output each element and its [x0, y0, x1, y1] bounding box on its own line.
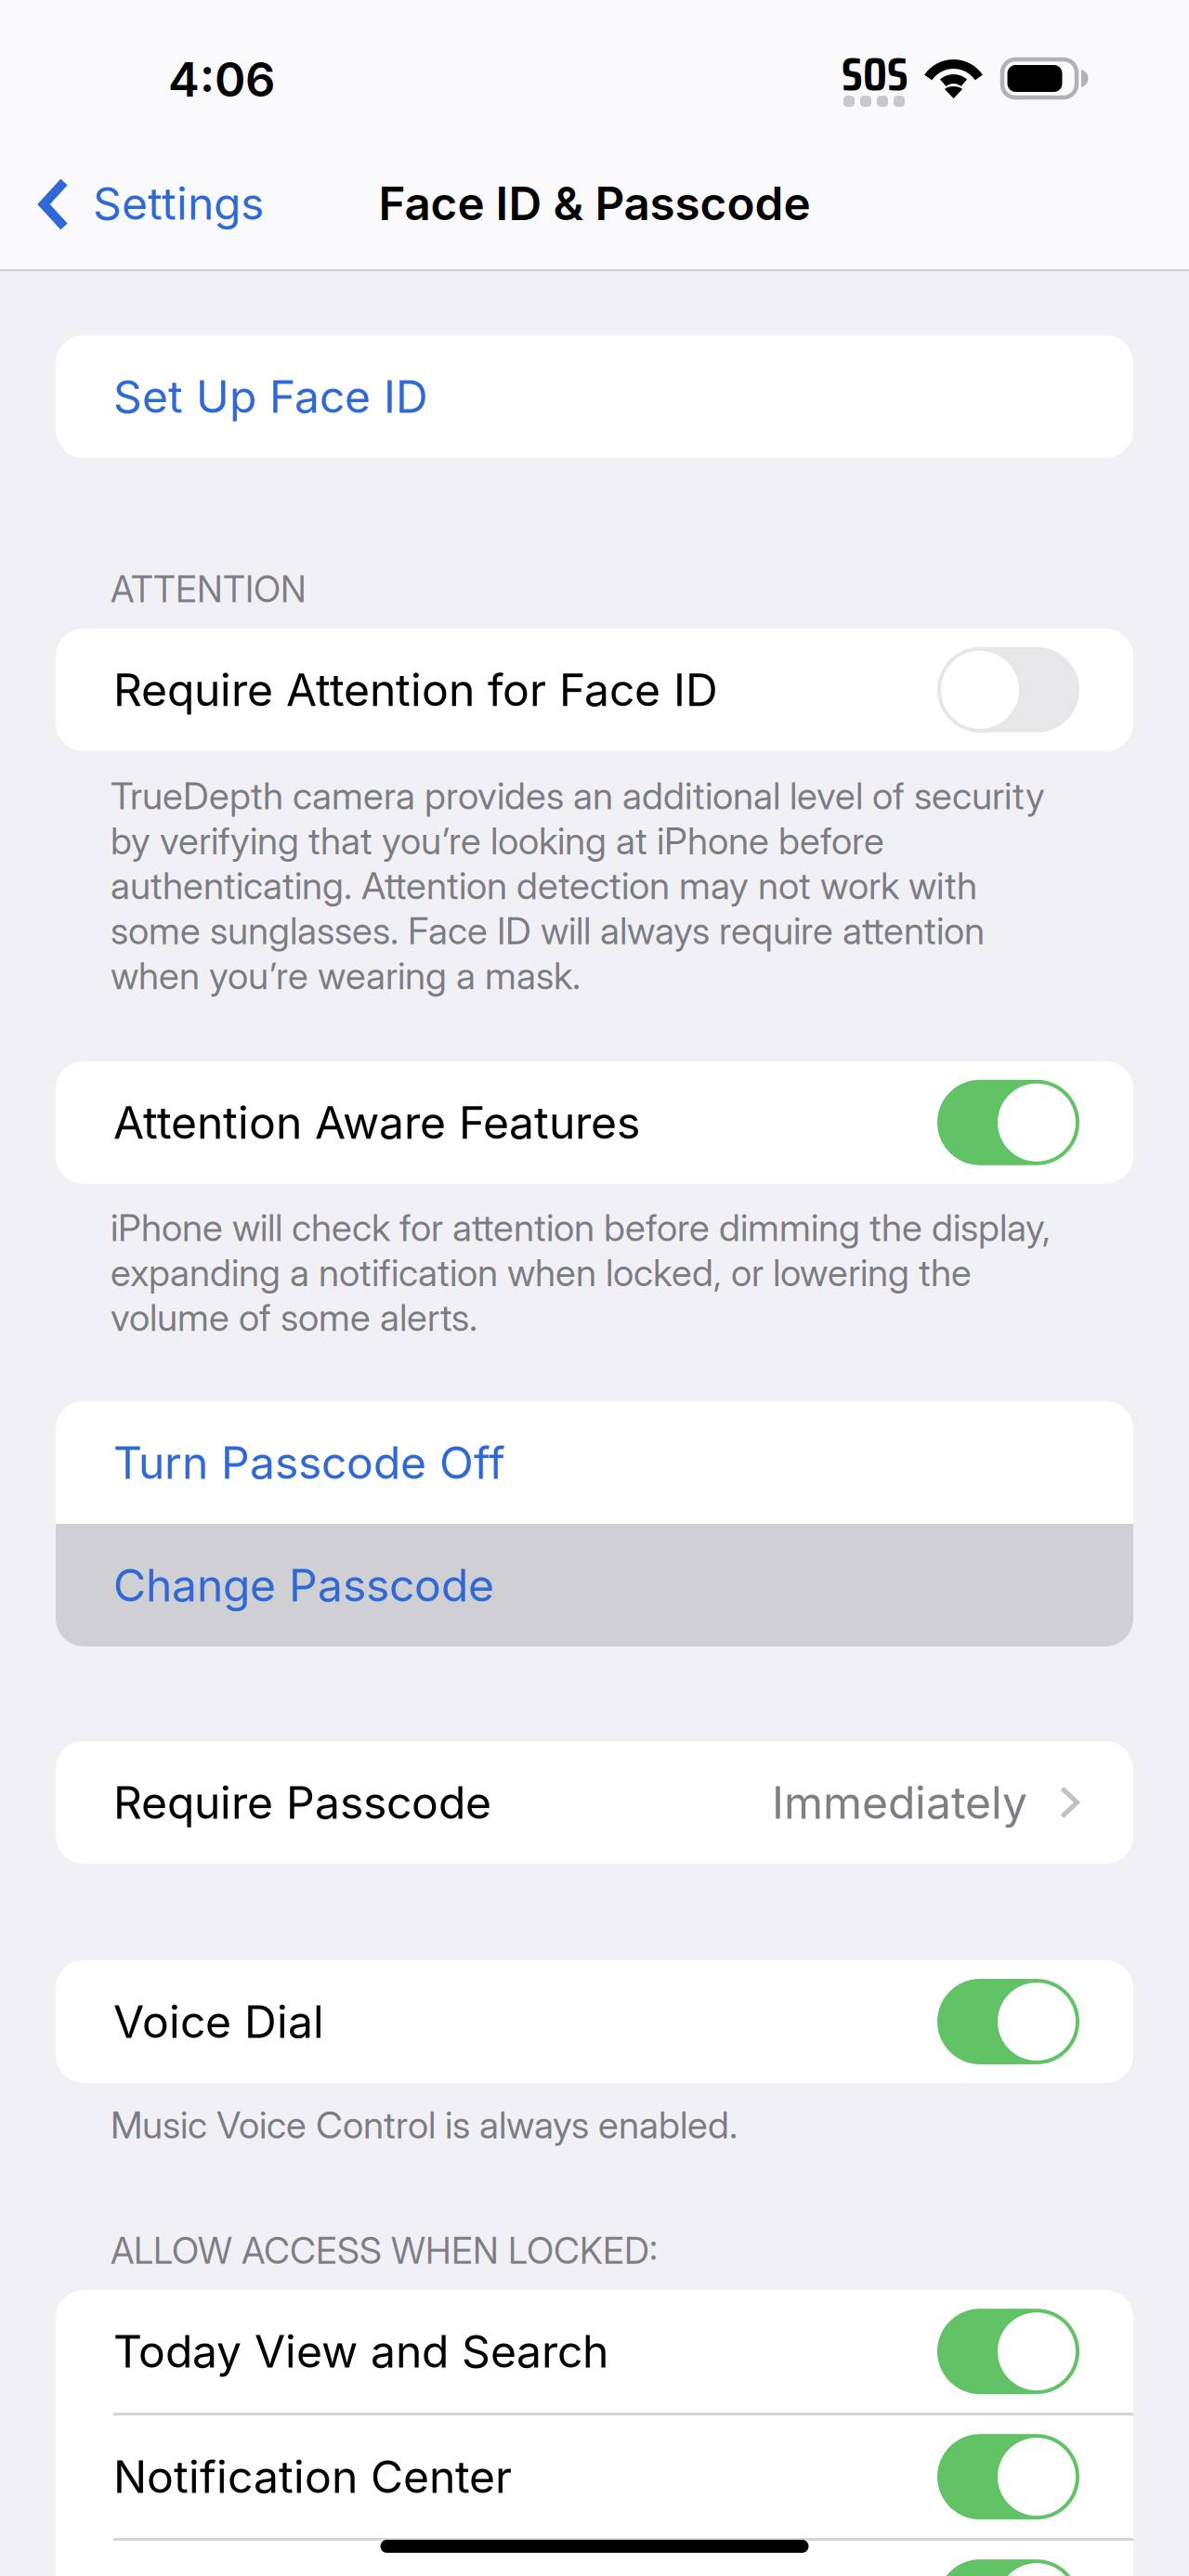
staticText: Notification Center [113, 2450, 512, 2504]
staticText: 4:06 [168, 51, 275, 108]
staticText: Require Passcode [113, 1775, 491, 1829]
staticText: TrueDepth camera provides an additional … [111, 773, 1045, 998]
staticText: Today View and Search [113, 2324, 608, 2378]
staticText: Settings [93, 176, 264, 230]
staticText: Immediately [772, 1775, 1027, 1829]
button[interactable]: Require Passcode [56, 1741, 1133, 1864]
staticText: Face ID & Passcode [379, 176, 810, 231]
button[interactable]: Set Up Face ID [56, 335, 1133, 458]
staticText: ATTENTION [111, 567, 307, 611]
staticText: Attention Aware Features [113, 1095, 640, 1149]
staticText: Turn Passcode Off [113, 1436, 505, 1490]
staticText: iPhone will check for attention before d… [111, 1205, 1051, 1340]
staticText: Change Passcode [113, 1558, 494, 1612]
staticText: Set Up Face ID [113, 370, 428, 424]
button[interactable]: Change Passcode [56, 1524, 1133, 1646]
button[interactable]: Settings [0, 137, 286, 269]
staticText: SOS [842, 37, 908, 111]
staticText: Require Attention for Face ID [113, 663, 718, 717]
staticText: ALLOW ACCESS WHEN LOCKED: [111, 2229, 658, 2273]
button[interactable]: Turn Passcode Off [56, 1401, 1133, 1524]
staticText: Music Voice Control is always enabled. [111, 2102, 738, 2147]
staticText: Voice Dial [113, 1995, 324, 2049]
